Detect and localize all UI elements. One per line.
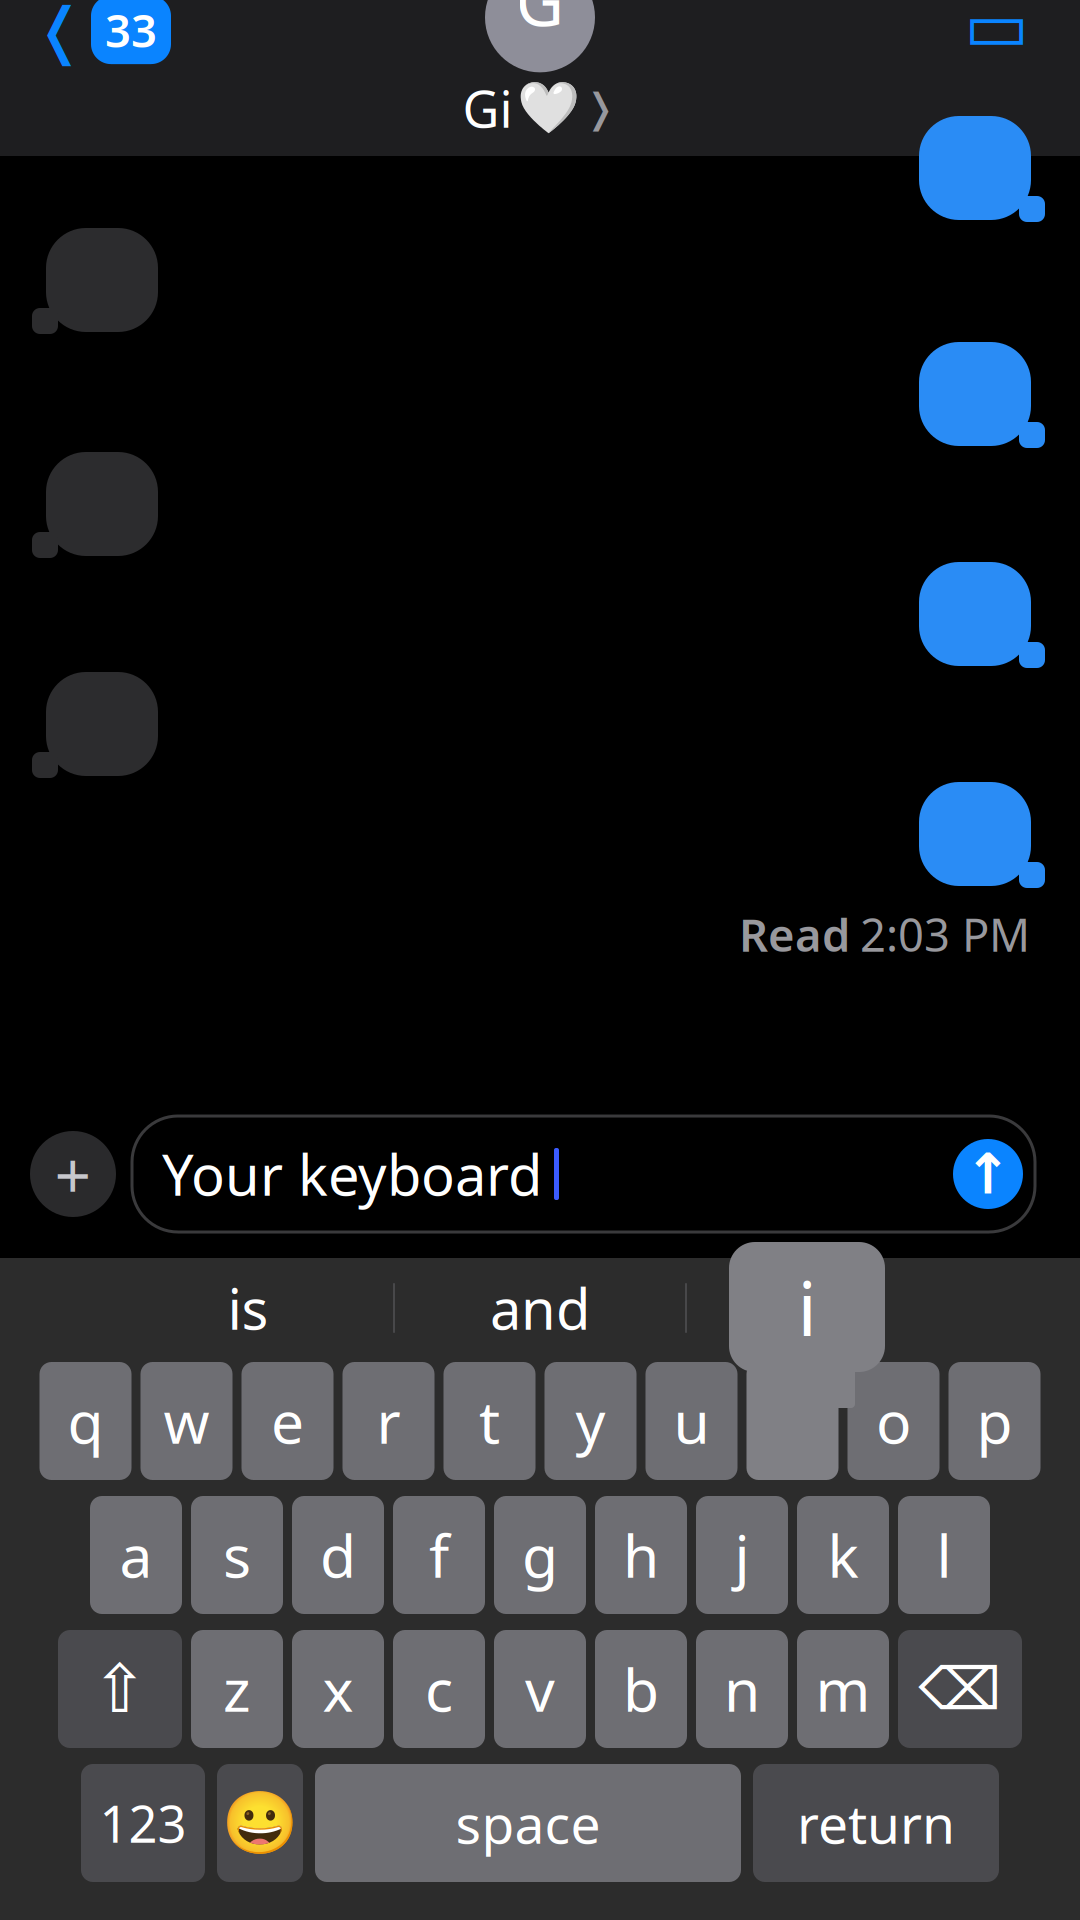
- button[interactable]: p: [948, 1362, 1040, 1480]
- button[interactable]: space: [315, 1764, 741, 1882]
- staticText: space: [455, 1788, 600, 1858]
- staticText: l: [936, 1516, 951, 1594]
- button[interactable]: v: [494, 1630, 586, 1748]
- button[interactable]: g: [494, 1496, 586, 1614]
- staticText: n: [724, 1650, 760, 1728]
- staticText: Read: [739, 904, 850, 964]
- button[interactable]: k: [797, 1496, 889, 1614]
- button[interactable]: q: [39, 1362, 131, 1480]
- staticText: ❭: [583, 85, 617, 131]
- staticText: 😀: [222, 1788, 298, 1858]
- staticText: x: [322, 1650, 353, 1728]
- staticText: ⌫: [918, 1656, 1001, 1722]
- button[interactable]: FaceTime video: [964, 0, 1080, 169]
- staticText: s: [223, 1516, 251, 1594]
- button[interactable]: t: [443, 1362, 535, 1480]
- staticText: b: [623, 1650, 659, 1728]
- button[interactable]: y: [544, 1362, 636, 1480]
- staticText: i: [797, 1257, 816, 1357]
- staticText: ❬: [34, 0, 85, 65]
- staticText: ↑: [964, 1142, 1011, 1206]
- staticText: z: [223, 1650, 251, 1728]
- staticText: h: [623, 1516, 659, 1594]
- button[interactable]: is: [103, 1262, 393, 1354]
- staticText: t: [479, 1382, 500, 1460]
- button[interactable]: a: [90, 1496, 182, 1614]
- staticText: y: [575, 1382, 605, 1460]
- staticText: a: [119, 1516, 152, 1594]
- staticText: ▭: [964, 0, 1030, 65]
- button[interactable]: j: [696, 1496, 788, 1614]
- button[interactable]: o: [847, 1362, 939, 1480]
- staticText: f: [429, 1516, 449, 1594]
- button[interactable]: 123: [81, 1764, 205, 1882]
- button[interactable]: r: [342, 1362, 434, 1480]
- staticText: +: [54, 1131, 91, 1216]
- staticText: is: [227, 1271, 268, 1345]
- button[interactable]: h: [595, 1496, 687, 1614]
- staticText: m: [815, 1650, 870, 1728]
- staticText: u: [673, 1382, 709, 1460]
- button[interactable]: s: [191, 1496, 283, 1614]
- button[interactable]: w: [140, 1362, 232, 1480]
- staticText: Gi: [462, 74, 512, 142]
- staticText: j: [734, 1516, 749, 1594]
- button[interactable]: Emoji: [217, 1764, 303, 1882]
- staticText: return: [797, 1788, 955, 1858]
- staticText: d: [320, 1516, 356, 1594]
- button[interactable]: and: [395, 1262, 685, 1354]
- button[interactable]: b: [595, 1630, 687, 1748]
- button[interactable]: as: [687, 1262, 977, 1354]
- staticText: Your keyboard: [162, 1137, 542, 1211]
- staticText: 123: [99, 1789, 186, 1857]
- button[interactable]: u: [645, 1362, 737, 1480]
- button[interactable]: Shift: [58, 1630, 182, 1748]
- button[interactable]: e: [241, 1362, 333, 1480]
- staticText: 🤍: [516, 79, 579, 137]
- button[interactable]: Send: [953, 1139, 1023, 1209]
- staticText: g: [522, 1516, 558, 1594]
- staticText: v: [525, 1650, 555, 1728]
- button[interactable]: return: [753, 1764, 999, 1882]
- staticText: w: [163, 1382, 209, 1460]
- button[interactable]: x: [292, 1630, 384, 1748]
- button[interactable]: d: [292, 1496, 384, 1614]
- staticText: and: [490, 1271, 590, 1345]
- button[interactable]: Delete: [898, 1630, 1022, 1748]
- button[interactable]: G: [462, 14, 617, 142]
- staticText: ⇧: [92, 1651, 148, 1727]
- button[interactable]: Add attachment: [30, 1131, 116, 1217]
- staticText: G: [515, 0, 564, 45]
- button[interactable]: z: [191, 1630, 283, 1748]
- button[interactable]: f: [393, 1496, 485, 1614]
- button[interactable]: n: [696, 1630, 788, 1748]
- staticText: as: [803, 1271, 861, 1345]
- staticText: r: [376, 1382, 400, 1460]
- staticText: q: [67, 1382, 103, 1460]
- staticText: p: [976, 1382, 1012, 1460]
- staticText: 2:03 PM: [860, 904, 1030, 964]
- staticText: 33: [105, 0, 157, 60]
- button[interactable]: l: [898, 1496, 990, 1614]
- staticText: c: [425, 1650, 453, 1728]
- button[interactable]: c: [393, 1630, 485, 1748]
- staticText: e: [271, 1382, 304, 1460]
- button[interactable]: m: [797, 1630, 889, 1748]
- staticText: k: [827, 1516, 858, 1594]
- staticText: o: [876, 1382, 911, 1460]
- button[interactable]: Back: [0, 0, 171, 161]
